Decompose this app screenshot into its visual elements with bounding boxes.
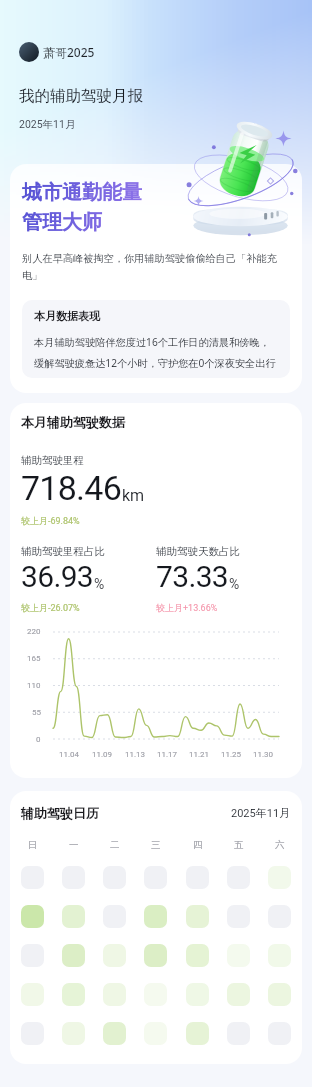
staticText: 11.09 — [92, 750, 113, 759]
staticText: 四 — [193, 839, 203, 851]
staticText: 辅助驾驶天数占比 — [156, 545, 240, 558]
staticText: 较上月-69.84% — [21, 515, 80, 526]
button[interactable] — [21, 905, 44, 928]
staticText: 一 — [69, 839, 79, 851]
button[interactable] — [103, 1022, 126, 1045]
button[interactable] — [144, 983, 167, 1006]
staticText: 2025年11月 — [19, 118, 76, 131]
staticText: % — [229, 576, 240, 592]
button[interactable] — [62, 905, 85, 928]
button[interactable] — [227, 866, 250, 889]
button[interactable] — [62, 944, 85, 967]
button[interactable] — [227, 905, 250, 928]
staticText: 本月辅助驾驶数据 — [21, 414, 125, 430]
staticText: 二 — [110, 839, 120, 851]
button[interactable] — [186, 1022, 209, 1045]
staticText: 萧哥2025 — [43, 44, 95, 60]
staticText: km — [122, 486, 145, 505]
staticText: 11.21 — [189, 750, 210, 759]
staticText: 本月辅助驾驶陪伴您度过16个工作日的清晨和傍晚，缓解驾驶疲惫达12个小时，守护您… — [34, 335, 278, 371]
staticText: 11.30 — [253, 750, 274, 759]
staticText: 220 — [27, 627, 41, 636]
button[interactable] — [144, 905, 167, 928]
button[interactable] — [227, 1022, 250, 1045]
button[interactable] — [268, 905, 291, 928]
staticText: 11.13 — [125, 750, 146, 759]
button[interactable] — [21, 983, 44, 1006]
staticText: 110 — [27, 681, 41, 690]
staticText: 11.17 — [157, 750, 178, 759]
button[interactable] — [144, 1022, 167, 1045]
staticText: 165 — [27, 654, 41, 663]
staticText: % — [94, 576, 105, 592]
staticText: 六 — [275, 839, 285, 851]
staticText: 0 — [36, 735, 41, 744]
button[interactable] — [62, 1022, 85, 1045]
staticText: 辅助驾驶里程占比 — [21, 545, 105, 558]
button[interactable] — [21, 1022, 44, 1045]
button[interactable] — [186, 983, 209, 1006]
staticText: 718.46 — [21, 468, 122, 508]
other: 充电电池插图 — [182, 116, 300, 241]
button[interactable] — [103, 944, 126, 967]
staticText: 三 — [151, 839, 161, 851]
button[interactable] — [186, 905, 209, 928]
staticText: 11.04 — [59, 750, 80, 759]
button[interactable] — [227, 944, 250, 967]
button[interactable] — [62, 866, 85, 889]
staticText: 辅助驾驶日历 — [21, 805, 99, 821]
staticText: 城市通勤能量 管理大师 — [22, 180, 142, 235]
staticText: 别人在早高峰被掏空，你用辅助驾驶偷偷给自己「补能充电」 — [22, 252, 290, 282]
button[interactable] — [144, 866, 167, 889]
button[interactable] — [62, 983, 85, 1006]
button[interactable] — [103, 866, 126, 889]
staticText: 2025年11月 — [231, 806, 291, 820]
button[interactable] — [144, 944, 167, 967]
staticText: 较上月-26.07% — [21, 602, 80, 613]
button[interactable] — [268, 983, 291, 1006]
staticText: 较上月+13.66% — [156, 602, 218, 613]
button[interactable] — [268, 866, 291, 889]
staticText: 我的辅助驾驶月报 — [19, 86, 143, 106]
button[interactable] — [103, 905, 126, 928]
staticText: 55 — [32, 708, 41, 717]
button[interactable] — [186, 866, 209, 889]
staticText: 本月数据表现 — [34, 309, 100, 323]
staticText: 11.25 — [221, 750, 242, 759]
staticText: 辅助驾驶里程 — [21, 454, 84, 467]
button[interactable] — [268, 1022, 291, 1045]
button[interactable] — [227, 983, 250, 1006]
button[interactable] — [21, 944, 44, 967]
staticText: 36.93 — [21, 559, 94, 594]
button[interactable] — [186, 944, 209, 967]
staticText: 五 — [234, 839, 244, 851]
button[interactable]: 萧哥2025 — [19, 42, 95, 62]
button[interactable] — [268, 944, 291, 967]
staticText: 日 — [28, 839, 38, 851]
button[interactable] — [21, 866, 44, 889]
staticText: 73.33 — [156, 559, 229, 594]
button[interactable] — [103, 983, 126, 1006]
